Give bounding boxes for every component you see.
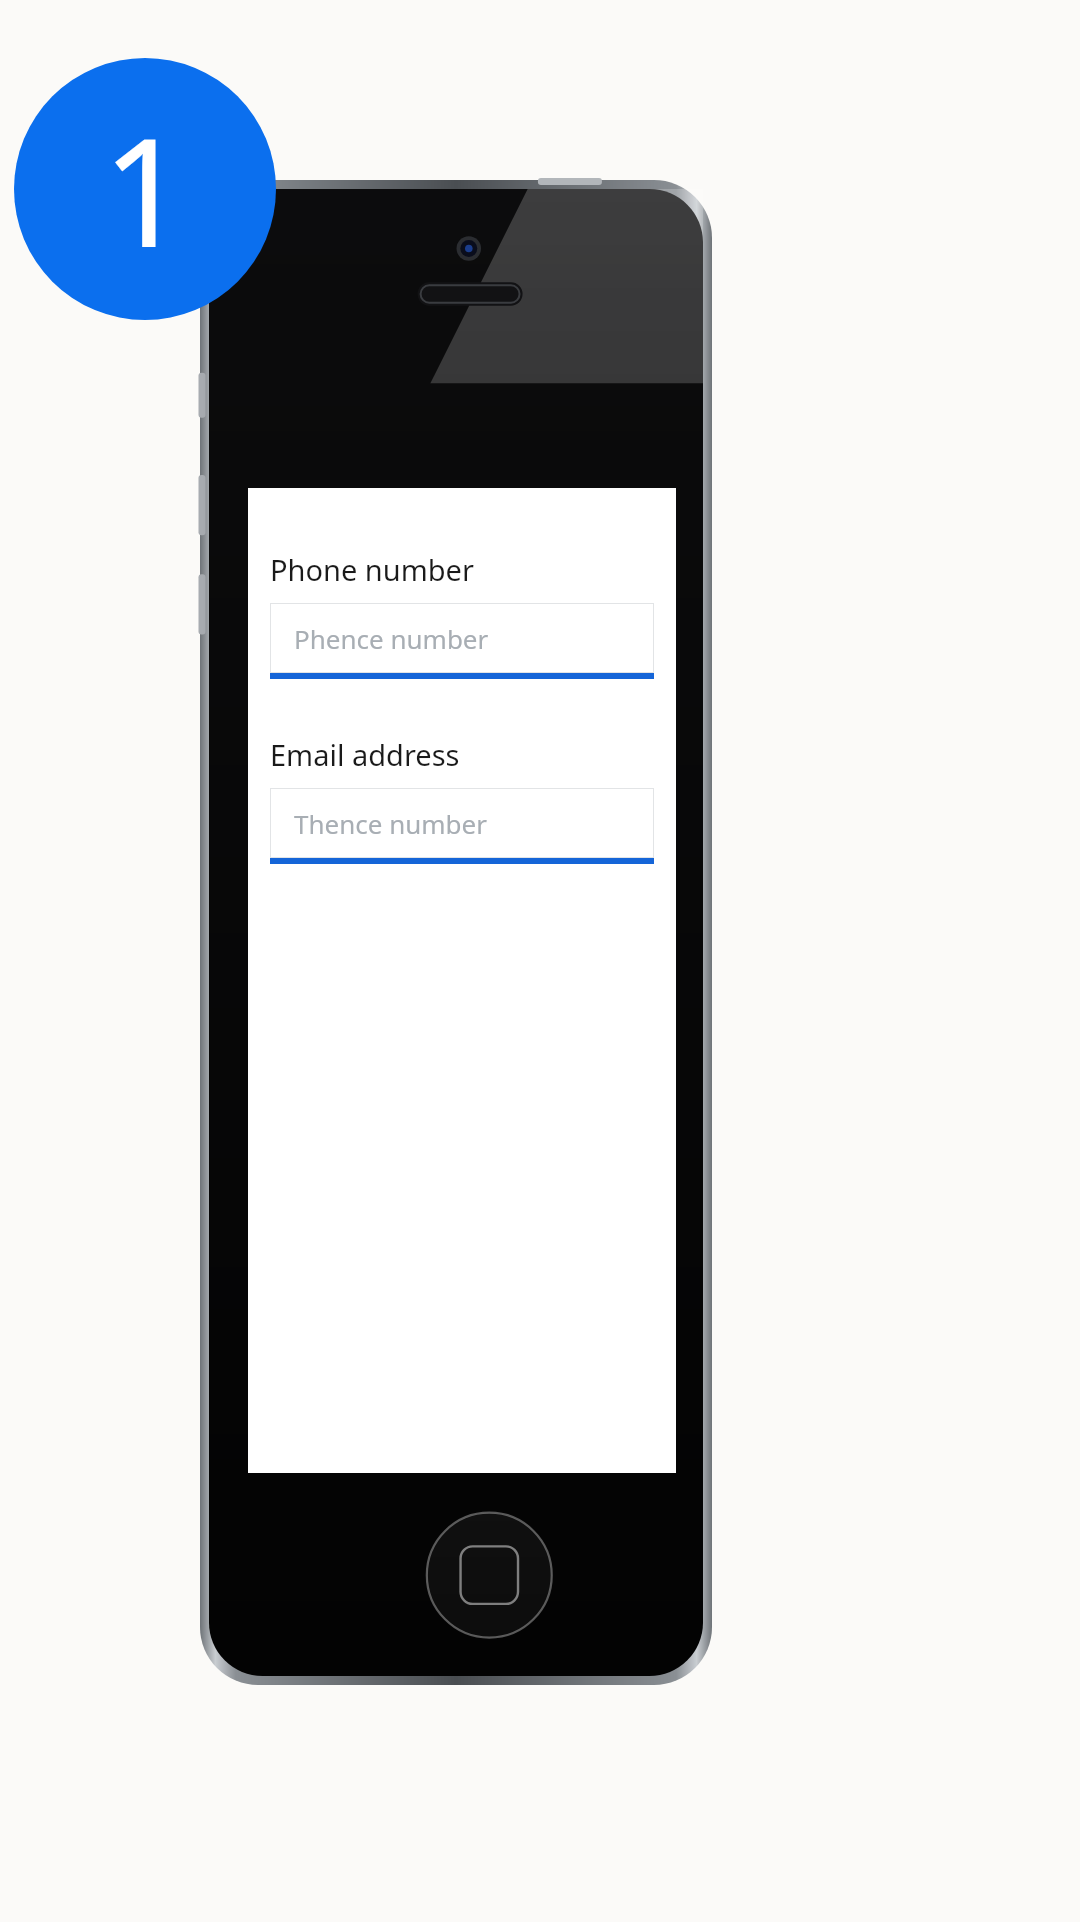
staticText: Phence number xyxy=(294,621,489,656)
button[interactable]: Phone number xyxy=(248,550,676,679)
staticText: Email address xyxy=(270,735,460,774)
staticText: Thence number xyxy=(294,806,487,841)
staticText: 1 xyxy=(102,87,188,291)
staticText: Phone number xyxy=(270,550,474,589)
button[interactable]: Step 1 xyxy=(14,58,276,320)
button[interactable]: Email address xyxy=(248,735,676,864)
